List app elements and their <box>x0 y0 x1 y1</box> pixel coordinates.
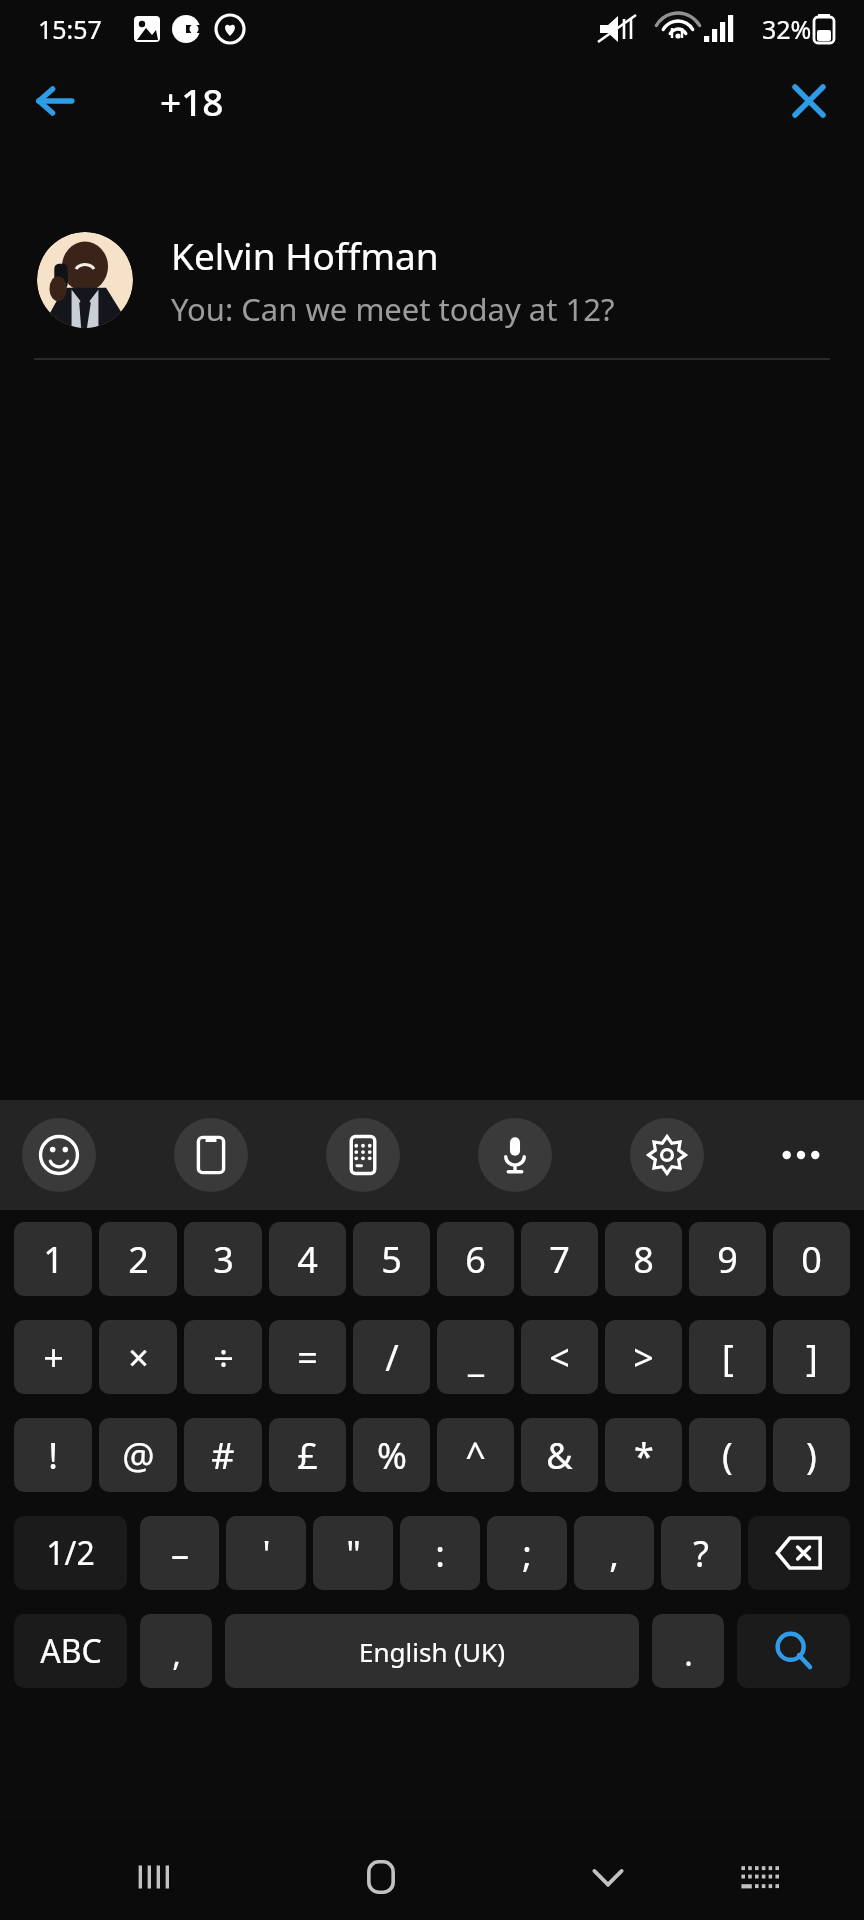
staticText: [ <box>722 1333 734 1382</box>
button[interactable]: ? <box>661 1516 741 1590</box>
staticText: , <box>172 1632 181 1676</box>
staticText: > <box>633 1333 654 1382</box>
button[interactable]: Hide keyboard <box>562 1834 654 1920</box>
staticText: 9 <box>717 1235 738 1284</box>
button[interactable]: ^ <box>437 1418 514 1492</box>
button[interactable]: Backspace <box>748 1516 850 1590</box>
button[interactable]: 1/2 <box>14 1516 127 1590</box>
button[interactable]: " <box>313 1516 393 1590</box>
button[interactable]: More options <box>764 1118 838 1192</box>
button[interactable]: English (UK) <box>225 1614 639 1688</box>
button[interactable]: 8 <box>605 1222 682 1296</box>
button[interactable]: / <box>353 1320 430 1394</box>
staticText: +18 <box>160 76 224 126</box>
staticText: ) <box>806 1431 817 1480</box>
button[interactable]: Back <box>22 72 88 130</box>
button[interactable]: Number pad <box>326 1118 400 1192</box>
staticText: English (UK) <box>359 1634 505 1669</box>
button[interactable]: Kelvin Hoffman <box>0 200 864 360</box>
staticText: : <box>435 1529 445 1578</box>
button[interactable]: ( <box>689 1418 766 1492</box>
staticText: × <box>128 1333 149 1382</box>
staticText: 8 <box>633 1235 654 1284</box>
button[interactable]: ; <box>487 1516 567 1590</box>
button[interactable]: × <box>99 1320 177 1394</box>
button[interactable]: Clipboard <box>174 1118 248 1192</box>
staticText: ( <box>722 1431 733 1480</box>
button[interactable]: 2 <box>99 1222 177 1296</box>
button[interactable]: ABC <box>14 1614 127 1688</box>
button[interactable]: * <box>605 1418 682 1492</box>
button[interactable]: Home <box>335 1834 427 1920</box>
staticText: 15:57 <box>38 12 102 46</box>
button[interactable]: Search <box>737 1614 850 1688</box>
staticText: You: Can we meet today at 12? <box>171 288 615 330</box>
button[interactable]: + <box>14 1320 92 1394</box>
button[interactable]: & <box>521 1418 598 1492</box>
button[interactable]: 9 <box>689 1222 766 1296</box>
button[interactable]: . <box>652 1614 724 1688</box>
button[interactable]: 5 <box>353 1222 430 1296</box>
button[interactable]: ] <box>773 1320 850 1394</box>
staticText: ; <box>522 1529 532 1578</box>
staticText: 1 <box>43 1235 64 1284</box>
staticText: " <box>346 1529 361 1578</box>
staticText: ÷ <box>213 1333 234 1382</box>
staticText: . <box>684 1632 693 1676</box>
button[interactable]: – <box>140 1516 219 1590</box>
button[interactable]: Change keyboard <box>713 1834 805 1920</box>
staticText: 7 <box>549 1235 570 1284</box>
button[interactable]: : <box>400 1516 480 1590</box>
staticText: * <box>634 1431 654 1480</box>
staticText: @ <box>122 1431 155 1480</box>
button[interactable]: ! <box>14 1418 92 1492</box>
button[interactable]: ÷ <box>184 1320 262 1394</box>
button[interactable]: 7 <box>521 1222 598 1296</box>
button[interactable]: Settings <box>630 1118 704 1192</box>
button[interactable]: 6 <box>437 1222 514 1296</box>
staticText: 1/2 <box>46 1531 95 1575</box>
staticText: 6 <box>465 1235 486 1284</box>
staticText: 32% <box>762 12 812 46</box>
staticText: 2 <box>128 1235 149 1284</box>
staticText: Kelvin Hoffman <box>171 230 439 280</box>
button[interactable]: Emoji <box>22 1118 96 1192</box>
button[interactable]: Close <box>776 72 842 130</box>
staticText: ABC <box>40 1629 102 1673</box>
button[interactable]: 1 <box>14 1222 92 1296</box>
staticText: 0 <box>801 1235 822 1284</box>
button[interactable]: [ <box>689 1320 766 1394</box>
button[interactable]: 0 <box>773 1222 850 1296</box>
button[interactable]: < <box>521 1320 598 1394</box>
button[interactable]: 4 <box>269 1222 346 1296</box>
staticText: / <box>385 1333 399 1382</box>
button[interactable]: = <box>269 1320 346 1394</box>
staticText: ! <box>48 1431 58 1480</box>
staticText: # <box>211 1431 235 1480</box>
button[interactable]: _ <box>437 1320 514 1394</box>
staticText: 4 <box>297 1235 318 1284</box>
staticText: ? <box>693 1529 709 1578</box>
staticText: £ <box>297 1431 318 1480</box>
staticText: ^ <box>465 1431 486 1480</box>
staticText: + <box>43 1333 64 1382</box>
staticText: 3 <box>213 1235 234 1284</box>
button[interactable]: Recents <box>108 1834 200 1920</box>
button[interactable]: % <box>353 1418 430 1492</box>
button[interactable]: # <box>184 1418 262 1492</box>
button[interactable]: ' <box>226 1516 306 1590</box>
button[interactable]: 3 <box>184 1222 262 1296</box>
button[interactable]: @ <box>99 1418 177 1492</box>
button[interactable]: , <box>574 1516 654 1590</box>
staticText: % <box>377 1431 407 1480</box>
button[interactable]: > <box>605 1320 682 1394</box>
staticText: 5 <box>381 1235 402 1284</box>
staticText: = <box>297 1333 318 1382</box>
button[interactable]: Voice input <box>478 1118 552 1192</box>
staticText: & <box>546 1431 573 1480</box>
button[interactable]: £ <box>269 1418 346 1492</box>
button[interactable]: , <box>140 1614 212 1688</box>
staticText: ] <box>806 1333 818 1382</box>
button[interactable]: ) <box>773 1418 850 1492</box>
staticText: – <box>171 1529 189 1578</box>
